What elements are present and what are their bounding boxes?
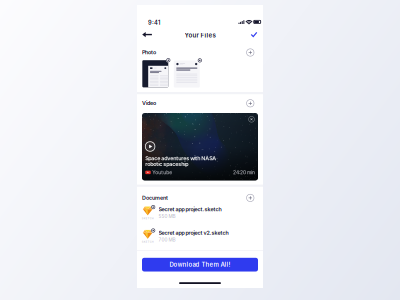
staticText: Document xyxy=(142,194,168,201)
button[interactable]: Download Them All! xyxy=(142,258,258,271)
staticText: Your Files xyxy=(184,32,215,39)
button[interactable]: Add document xyxy=(244,192,256,204)
staticText: Secret app project.sketch xyxy=(159,206,222,213)
staticText: 700 MB xyxy=(159,237,176,243)
staticText: robotic spaceship xyxy=(145,161,188,167)
button[interactable]: SKETCH xyxy=(137,201,263,224)
staticText: Photo xyxy=(142,49,156,55)
button[interactable]: Space adventures with NASA robotic space… xyxy=(142,113,258,180)
button[interactable]: Photo, article screenshot xyxy=(174,60,200,88)
staticText: 24:20 min xyxy=(233,169,255,175)
staticText: Download Them All! xyxy=(169,261,230,268)
staticText: 9:41 xyxy=(148,19,160,26)
button[interactable]: Confirm selection xyxy=(247,29,260,40)
staticText: 550 MB xyxy=(159,214,176,219)
button[interactable]: Photo, laptop document xyxy=(142,60,168,87)
staticText: Secret app project v2.sketch xyxy=(159,230,229,236)
button[interactable]: SKETCH xyxy=(137,224,263,248)
staticText: SKETCH xyxy=(142,217,154,220)
staticText: Space adventures with NASA xyxy=(145,155,216,162)
button[interactable]: Back xyxy=(139,29,155,41)
staticText: Youtube xyxy=(152,169,172,175)
button[interactable]: Add photo xyxy=(244,47,256,58)
staticText: Video xyxy=(142,100,156,106)
button[interactable]: Add video xyxy=(244,97,256,109)
staticText: SKETCH xyxy=(142,240,154,243)
